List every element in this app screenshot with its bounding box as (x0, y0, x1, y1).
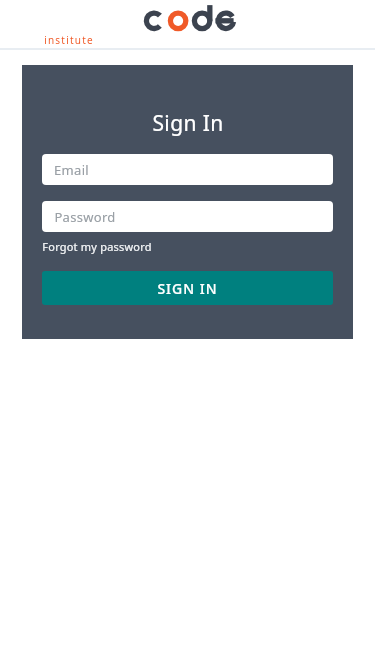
staticText: Password (54, 208, 116, 226)
button[interactable]: Forgot my password (42, 237, 152, 256)
staticText: institute (44, 33, 94, 47)
button[interactable]: SIGN IN (42, 271, 333, 305)
staticText: Sign In (152, 109, 224, 138)
button[interactable]: Password (42, 201, 333, 232)
staticText: Forgot my password (42, 239, 152, 254)
staticText: SIGN IN (157, 279, 218, 298)
staticText: Email (54, 161, 89, 179)
other: Code Institute logo (142, 4, 238, 32)
button[interactable]: Email (42, 154, 333, 185)
